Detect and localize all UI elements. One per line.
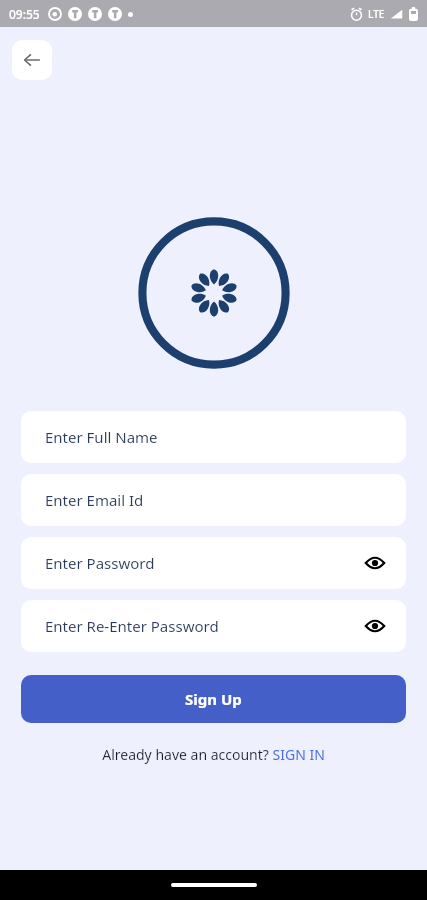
staticText: 09:55 [9, 6, 40, 22]
button[interactable]: Enter Password [21, 537, 406, 589]
button[interactable]: Show password [360, 548, 390, 578]
staticText: LTE [368, 7, 385, 21]
button[interactable]: Back [12, 40, 52, 80]
button[interactable]: Show password [360, 611, 390, 641]
button[interactable]: Enter Full Name [21, 411, 406, 463]
button[interactable]: Already have an account? SIGN IN [90, 742, 337, 767]
staticText: Enter Re-Enter Password [45, 616, 219, 636]
button[interactable]: Enter Email Id [21, 474, 406, 526]
button[interactable]: Enter Re-Enter Password [21, 600, 406, 652]
staticText: Enter Full Name [45, 427, 158, 447]
button[interactable]: Sign Up [21, 675, 406, 723]
staticText: Already have an account? SIGN IN [102, 745, 325, 764]
staticText: Enter Email Id [45, 490, 144, 510]
staticText: Enter Password [45, 553, 155, 573]
staticText: Sign Up [185, 689, 242, 709]
